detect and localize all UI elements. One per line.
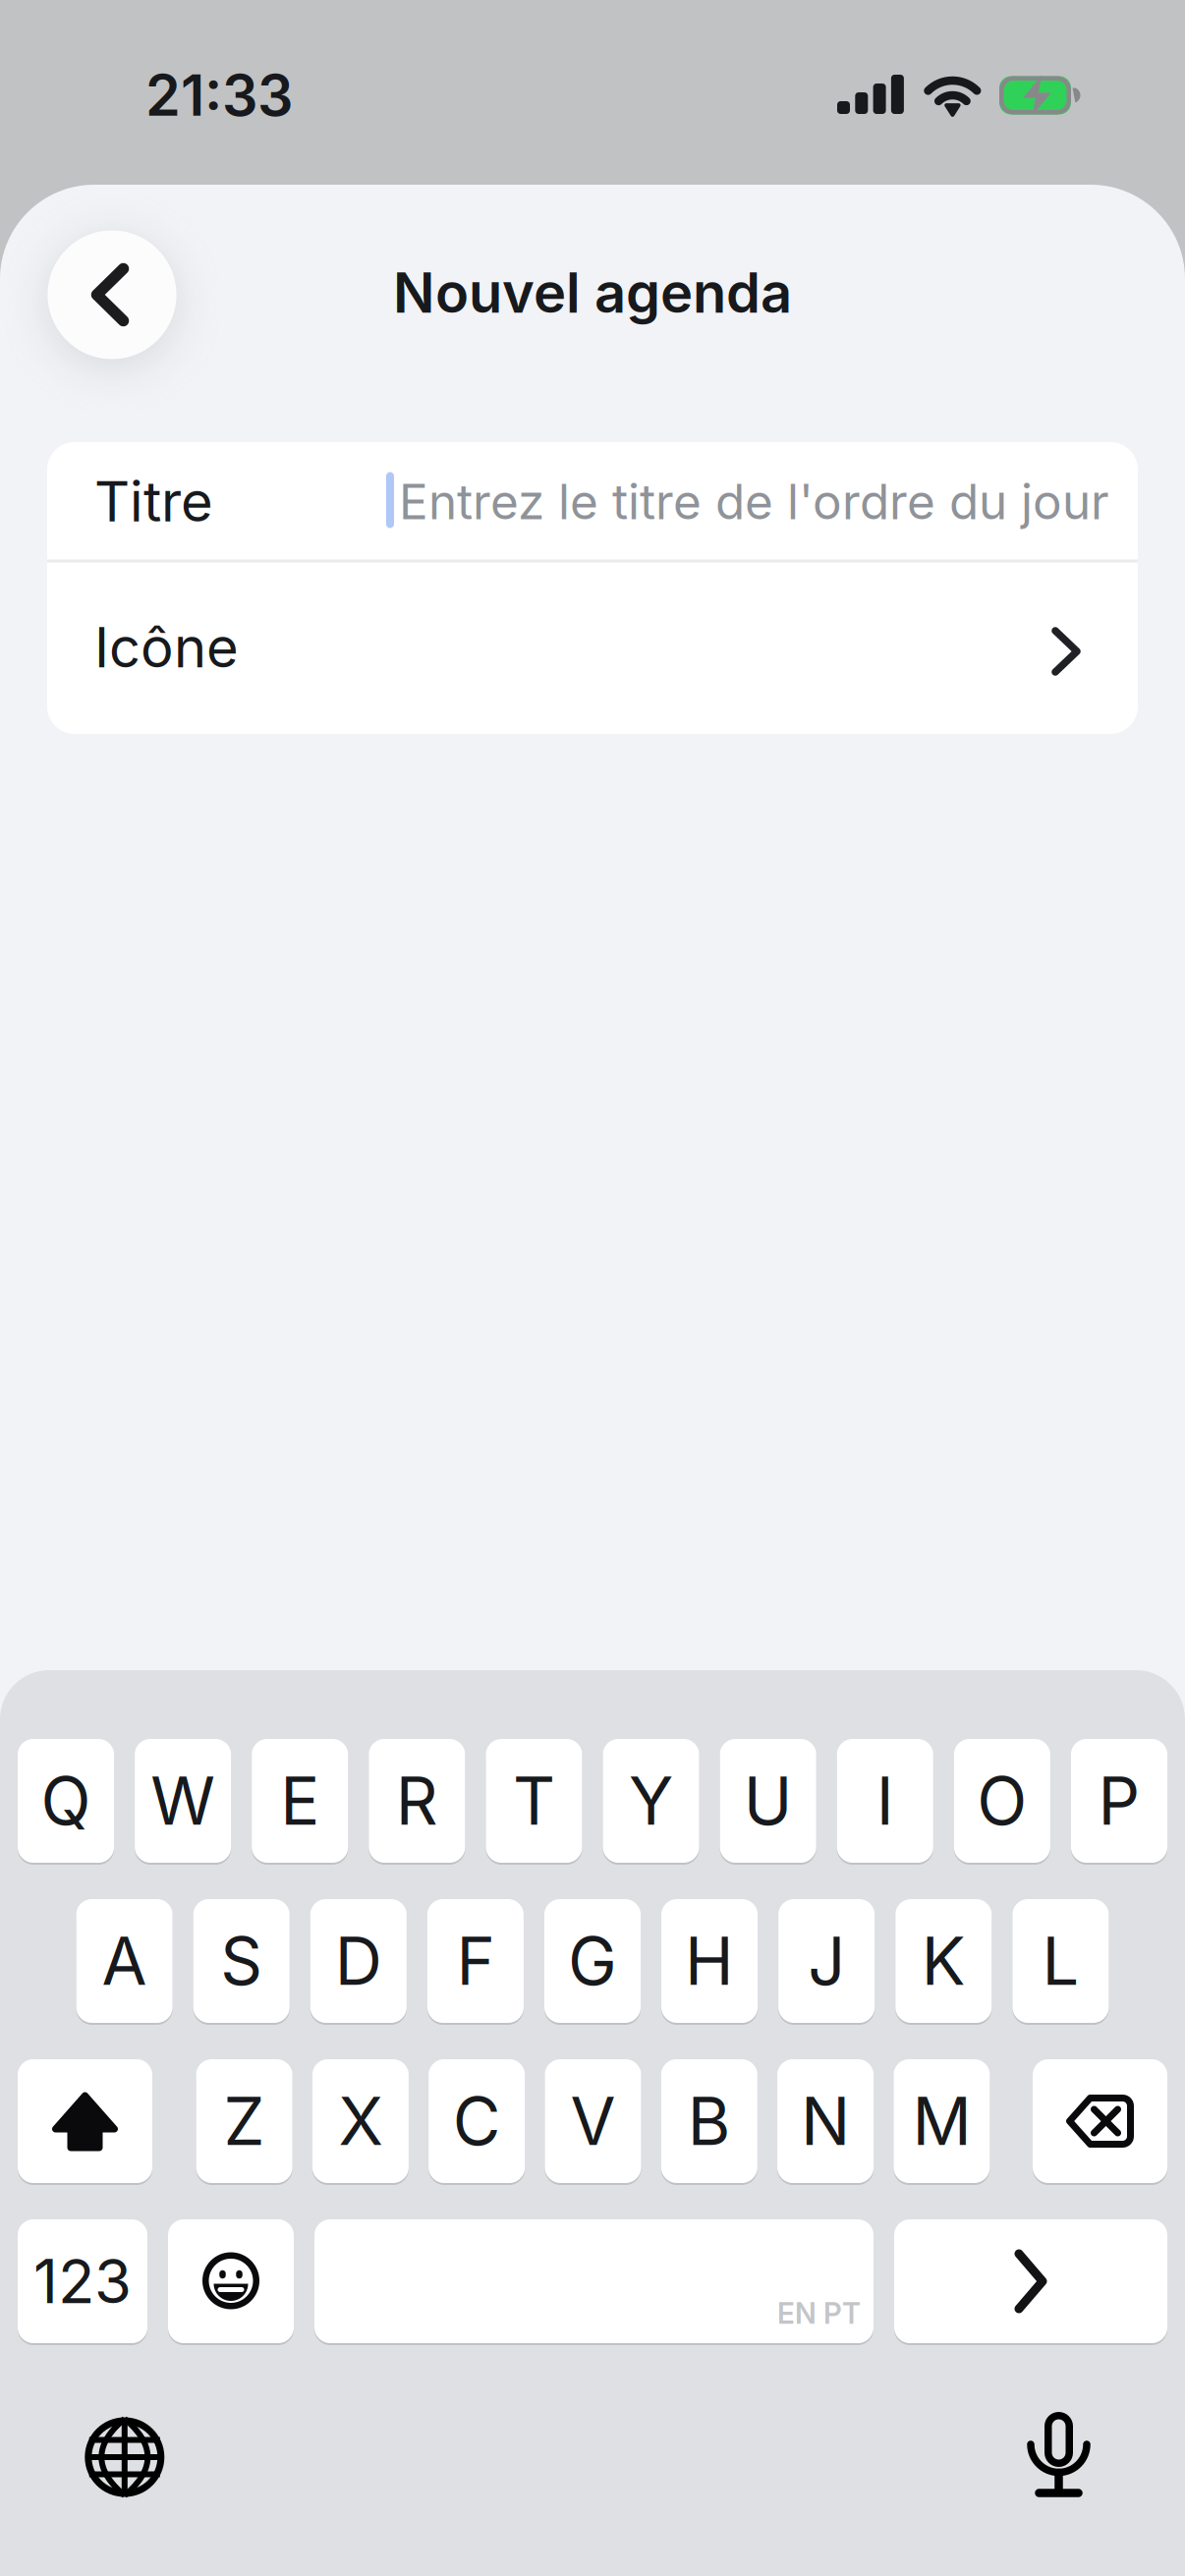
button[interactable]: M bbox=[894, 2058, 990, 2184]
staticText: X bbox=[338, 2082, 383, 2161]
staticText: U bbox=[743, 1761, 793, 1841]
staticText: W bbox=[151, 1761, 215, 1841]
button[interactable]: T bbox=[486, 1737, 582, 1864]
button[interactable]: Z bbox=[196, 2058, 293, 2184]
staticText: Z bbox=[224, 2082, 265, 2161]
staticText: N bbox=[801, 2082, 850, 2161]
button[interactable]: I bbox=[837, 1737, 933, 1864]
button[interactable] bbox=[168, 2218, 294, 2345]
staticText: Icône bbox=[94, 614, 239, 681]
staticText: 123 bbox=[33, 2245, 132, 2318]
staticText: EN PT bbox=[777, 2296, 861, 2331]
button[interactable]: U bbox=[720, 1737, 816, 1864]
staticText: Y bbox=[629, 1761, 673, 1841]
staticText: M bbox=[912, 2082, 971, 2161]
button[interactable]: A bbox=[76, 1898, 173, 2024]
button[interactable]: Icône bbox=[47, 561, 1138, 734]
button[interactable]: Titre bbox=[47, 442, 1138, 561]
button[interactable]: K bbox=[895, 1898, 992, 2024]
button[interactable]: Q bbox=[18, 1737, 114, 1864]
button[interactable]: P bbox=[1071, 1737, 1167, 1864]
staticText: C bbox=[453, 2082, 501, 2161]
staticText: L bbox=[1042, 1921, 1079, 2001]
button[interactable]: H bbox=[661, 1898, 758, 2024]
staticText: O bbox=[977, 1761, 1027, 1841]
button[interactable] bbox=[48, 230, 176, 359]
staticText: G bbox=[568, 1921, 617, 2001]
button[interactable] bbox=[75, 2408, 174, 2506]
button[interactable]: 123 bbox=[18, 2218, 147, 2345]
button[interactable]: EN PT bbox=[314, 2218, 874, 2345]
button[interactable]: F bbox=[427, 1898, 524, 2024]
button[interactable]: N bbox=[777, 2058, 874, 2184]
button[interactable] bbox=[894, 2218, 1167, 2345]
button[interactable] bbox=[18, 2058, 152, 2184]
staticText: R bbox=[396, 1761, 438, 1841]
button[interactable]: E bbox=[252, 1737, 348, 1864]
staticText: F bbox=[456, 1921, 495, 2001]
button[interactable] bbox=[1010, 2404, 1108, 2502]
button[interactable]: S bbox=[193, 1898, 290, 2024]
staticText: Q bbox=[41, 1761, 91, 1841]
staticText: B bbox=[688, 2082, 731, 2161]
staticText: 21:33 bbox=[145, 61, 293, 129]
button[interactable]: D bbox=[310, 1898, 407, 2024]
button[interactable]: C bbox=[429, 2058, 525, 2184]
staticText: Titre bbox=[94, 468, 213, 535]
button[interactable]: X bbox=[312, 2058, 409, 2184]
staticText: K bbox=[921, 1921, 966, 2001]
button[interactable]: Y bbox=[603, 1737, 699, 1864]
button[interactable]: R bbox=[369, 1737, 465, 1864]
staticText: Nouvel agenda bbox=[393, 259, 792, 326]
staticText: J bbox=[808, 1921, 845, 2001]
button[interactable]: V bbox=[545, 2058, 641, 2184]
button[interactable]: O bbox=[954, 1737, 1050, 1864]
staticText: T bbox=[513, 1761, 555, 1841]
button[interactable]: W bbox=[135, 1737, 231, 1864]
staticText: V bbox=[570, 2082, 616, 2161]
staticText: H bbox=[685, 1921, 734, 2001]
staticText: Entrez le titre de l'ordre du jour bbox=[399, 472, 1109, 531]
button[interactable]: G bbox=[544, 1898, 641, 2024]
button[interactable] bbox=[1033, 2058, 1167, 2184]
button[interactable]: L bbox=[1012, 1898, 1109, 2024]
button[interactable]: J bbox=[778, 1898, 875, 2024]
staticText: P bbox=[1098, 1761, 1140, 1841]
staticText: D bbox=[335, 1921, 382, 2001]
staticText: S bbox=[220, 1921, 263, 2001]
staticText: E bbox=[280, 1761, 320, 1841]
staticText: A bbox=[102, 1921, 147, 2001]
button[interactable]: B bbox=[661, 2058, 757, 2184]
staticText: I bbox=[876, 1761, 894, 1841]
